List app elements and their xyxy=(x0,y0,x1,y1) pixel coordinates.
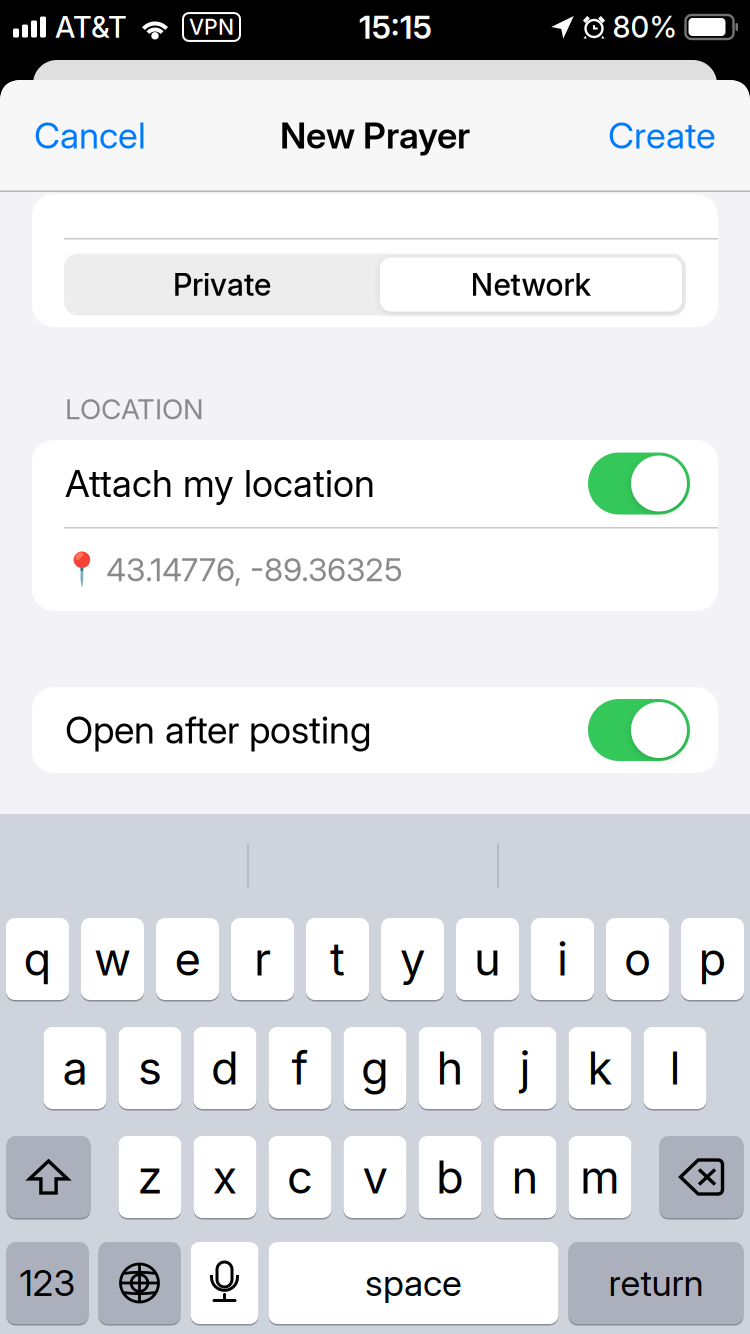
staticText: a xyxy=(62,1041,87,1095)
button[interactable]: Delete xyxy=(659,1136,743,1218)
staticText: 123 xyxy=(19,1261,75,1305)
staticText: o xyxy=(624,932,651,986)
button[interactable]: d xyxy=(193,1027,256,1109)
button[interactable]: k xyxy=(568,1027,631,1109)
staticText: Attach my location xyxy=(65,461,375,506)
staticText: Network xyxy=(470,266,591,303)
button[interactable]: t xyxy=(306,918,369,1000)
staticText: u xyxy=(474,932,501,986)
button[interactable]: 123 xyxy=(6,1242,88,1324)
staticText: e xyxy=(174,932,200,986)
staticText: VPN xyxy=(189,14,234,40)
button[interactable]: o xyxy=(606,918,669,1000)
staticText: m xyxy=(580,1150,620,1204)
staticText: j xyxy=(519,1041,530,1095)
button[interactable]: i xyxy=(531,918,594,1000)
button[interactable]: f xyxy=(268,1027,331,1109)
button[interactable]: n xyxy=(493,1136,556,1218)
button[interactable]: c xyxy=(268,1136,331,1218)
button[interactable]: y xyxy=(381,918,444,1000)
staticText: p xyxy=(698,932,726,986)
button[interactable]: Shift xyxy=(6,1136,90,1218)
staticText: t xyxy=(330,932,345,986)
staticText: New Prayer xyxy=(280,114,470,157)
button[interactable]: Open after posting xyxy=(588,699,690,761)
staticText: x xyxy=(212,1150,237,1204)
button[interactable]: s xyxy=(118,1027,181,1109)
button[interactable]: Cancel xyxy=(16,100,164,171)
staticText: g xyxy=(361,1041,389,1095)
staticText: AT&T xyxy=(55,9,127,45)
button[interactable]: Network xyxy=(380,257,682,311)
button[interactable]: Dictation xyxy=(190,1242,258,1324)
button[interactable]: l xyxy=(643,1027,706,1109)
button[interactable]: space xyxy=(268,1242,558,1324)
staticText: r xyxy=(254,932,271,986)
button[interactable]: return xyxy=(568,1242,743,1324)
button[interactable]: v xyxy=(343,1136,406,1218)
button[interactable]: Next keyboard xyxy=(98,1242,180,1324)
button[interactable]: Attach my location xyxy=(588,452,690,514)
staticText: Open after posting xyxy=(65,707,372,753)
button[interactable]: j xyxy=(493,1027,556,1109)
staticText: v xyxy=(362,1150,387,1204)
button[interactable]: e xyxy=(156,918,219,1000)
button[interactable]: x xyxy=(193,1136,256,1218)
staticText: z xyxy=(137,1150,162,1204)
staticText: h xyxy=(436,1041,463,1095)
button[interactable]: u xyxy=(456,918,519,1000)
button[interactable]: w xyxy=(81,918,144,1000)
staticText: 80% xyxy=(612,9,677,45)
staticText: 15:15 xyxy=(359,8,432,46)
button[interactable]: b xyxy=(418,1136,481,1218)
staticText: c xyxy=(287,1150,313,1204)
staticText: y xyxy=(400,932,425,986)
button[interactable]: a xyxy=(43,1027,106,1109)
staticText: b xyxy=(436,1150,464,1204)
button[interactable]: z xyxy=(118,1136,181,1218)
staticText: w xyxy=(94,932,131,986)
staticText: l xyxy=(669,1041,680,1095)
button[interactable]: h xyxy=(418,1027,481,1109)
button[interactable]: m xyxy=(568,1136,631,1218)
staticText: n xyxy=(511,1150,538,1204)
staticText: 📍 xyxy=(62,551,102,588)
button[interactable]: Create xyxy=(590,100,734,171)
staticText: space xyxy=(365,1261,462,1305)
staticText: LOCATION xyxy=(65,392,204,426)
staticText: s xyxy=(138,1041,162,1095)
staticText: 43.14776, -89.36325 xyxy=(106,550,403,589)
button[interactable]: Private xyxy=(64,253,380,315)
staticText: f xyxy=(291,1041,308,1095)
staticText: k xyxy=(587,1041,612,1095)
staticText: Create xyxy=(608,114,716,157)
staticText: d xyxy=(211,1041,239,1095)
staticText: i xyxy=(557,932,568,986)
staticText: Cancel xyxy=(34,114,146,157)
staticText: Private xyxy=(173,266,271,303)
button[interactable]: g xyxy=(343,1027,406,1109)
staticText: return xyxy=(608,1261,703,1305)
button[interactable]: r xyxy=(231,918,294,1000)
button[interactable]: q xyxy=(6,918,69,1000)
button[interactable]: p xyxy=(681,918,744,1000)
staticText: q xyxy=(23,932,51,986)
